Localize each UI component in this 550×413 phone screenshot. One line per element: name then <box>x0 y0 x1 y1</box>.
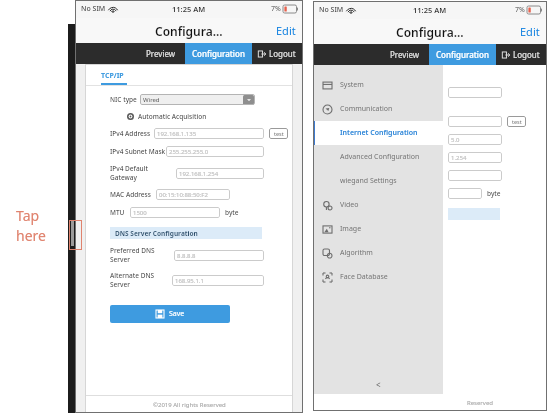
button[interactable]: 00:15:10:88:50:F2 <box>156 189 230 200</box>
staticText: NIC type <box>110 95 137 104</box>
staticText: Automatic Acquisition <box>138 112 207 121</box>
staticText: byte <box>225 208 239 217</box>
staticText: Face Database <box>340 272 388 282</box>
staticText: Logout <box>269 48 296 59</box>
staticText: No SIM <box>81 4 106 14</box>
button[interactable]: Preview <box>381 44 429 65</box>
staticText: 5.0 <box>451 136 460 144</box>
staticText: MAC Address <box>110 190 156 199</box>
button[interactable]: Back <box>313 374 443 394</box>
staticText: Configuration <box>192 48 245 59</box>
staticText: test <box>274 130 284 137</box>
staticText: Image <box>340 224 362 234</box>
staticText: 1.254 <box>451 154 467 162</box>
button[interactable]: 192.168.1.135 <box>154 128 264 139</box>
staticText: Internet Configuration <box>340 128 418 138</box>
button[interactable] <box>448 87 502 98</box>
staticText: MTU <box>110 208 130 217</box>
staticText: Configura... <box>155 23 223 39</box>
button[interactable]: Communication <box>313 97 443 121</box>
button[interactable]: Preview <box>137 43 185 64</box>
staticText: 168.95.1.1 <box>175 277 204 285</box>
staticText: Wired <box>143 96 160 104</box>
staticText: 192.168.1.135 <box>157 130 197 138</box>
button[interactable]: Logout <box>252 43 303 64</box>
staticText: 7% <box>271 4 281 14</box>
button[interactable]: 5.0 <box>448 134 502 145</box>
staticText: No SIM <box>319 5 344 15</box>
button[interactable]: Wired <box>140 94 255 105</box>
staticText: IPv4 Subnet Mask <box>110 147 166 156</box>
staticText: Alternate DNS Server <box>110 271 172 289</box>
staticText: Logout <box>513 49 540 60</box>
button[interactable]: Configuration <box>429 44 496 65</box>
staticText: ©2019 All rights Reserved <box>153 401 226 409</box>
button[interactable]: Automatic Acquisition <box>110 112 207 121</box>
staticText: Preferred DNS Server <box>110 246 174 264</box>
staticText: 00:15:10:88:50:F2 <box>159 191 208 199</box>
staticText: Video <box>340 200 359 210</box>
staticText: Configura... <box>396 24 464 40</box>
staticText: Algorithm <box>340 248 373 258</box>
staticText: Advanced Configuration <box>340 152 420 162</box>
staticText: test <box>512 118 522 125</box>
staticText: 1500 <box>133 209 147 217</box>
staticText: Tap <box>16 206 40 225</box>
button[interactable]: Edit <box>269 19 303 42</box>
staticText: Preview <box>390 49 420 60</box>
staticText: 7% <box>515 5 525 15</box>
button[interactable]: Edit <box>513 20 547 43</box>
staticText: 8.8.8.8 <box>177 252 196 260</box>
staticText: < <box>376 379 381 390</box>
staticText: here <box>16 226 46 245</box>
button[interactable]: 168.95.1.1 <box>172 275 264 286</box>
staticText: byte <box>487 189 501 198</box>
button[interactable]: 1500 <box>130 207 220 218</box>
button[interactable]: Face Database <box>313 265 443 289</box>
staticText: Configuration <box>436 49 489 60</box>
staticText: TCP/IP <box>101 71 124 81</box>
button[interactable]: 8.8.8.8 <box>174 250 264 261</box>
button[interactable]: 255.255.255.0 <box>166 146 264 157</box>
staticText: Save <box>169 309 185 319</box>
staticText: Communication <box>340 104 393 114</box>
button[interactable]: 192.168.1.254 <box>176 168 264 179</box>
staticText: 11:25 AM <box>172 4 206 14</box>
staticText: wiegand Settings <box>340 176 397 186</box>
button[interactable]: Internet Configuration <box>313 121 443 145</box>
staticText: IPv4 Address <box>110 129 154 138</box>
button[interactable]: 1.254 <box>448 152 502 163</box>
button[interactable] <box>448 116 502 127</box>
button[interactable]: Image <box>313 217 443 241</box>
staticText: IPv4 Default Gateway <box>110 164 176 182</box>
staticText: System <box>340 80 364 90</box>
button[interactable]: Video <box>313 193 443 217</box>
button[interactable]: Save <box>110 305 230 323</box>
button[interactable]: System <box>313 73 443 97</box>
staticText: DNS Server Configuration <box>115 229 198 238</box>
button[interactable]: wiegand Settings <box>313 169 443 193</box>
button[interactable] <box>448 170 502 181</box>
button[interactable]: test <box>507 116 526 127</box>
staticText: Preview <box>146 48 176 59</box>
staticText: Edit <box>520 24 540 39</box>
button[interactable]: Algorithm <box>313 241 443 265</box>
button[interactable]: Configuration <box>185 43 252 64</box>
staticText: 192.168.1.254 <box>179 170 219 178</box>
button[interactable]: Logout <box>496 44 547 65</box>
button[interactable]: Advanced Configuration <box>313 145 443 169</box>
staticText: Reserved <box>467 399 493 407</box>
button[interactable] <box>448 188 482 199</box>
button[interactable]: test <box>269 128 288 139</box>
staticText: Edit <box>276 23 296 38</box>
staticText: 11:25 AM <box>413 5 447 15</box>
staticText: 255.255.255.0 <box>169 148 209 156</box>
